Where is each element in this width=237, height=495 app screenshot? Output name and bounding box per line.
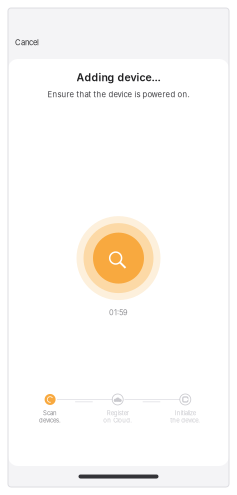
staticText: devices.	[39, 417, 61, 424]
staticText: Ensure that the device is powered on.	[47, 90, 189, 99]
button[interactable]: Cancel	[8, 12, 46, 55]
staticText: 01:59	[109, 308, 128, 317]
staticText: on Cloud.	[103, 417, 132, 424]
staticText: Scan	[43, 409, 57, 417]
staticText: Initialize	[175, 409, 196, 417]
staticText: the device.	[170, 417, 200, 424]
staticText: Cancel	[15, 38, 39, 47]
staticText: Adding device...	[76, 71, 160, 84]
staticText: Register	[107, 409, 129, 417]
